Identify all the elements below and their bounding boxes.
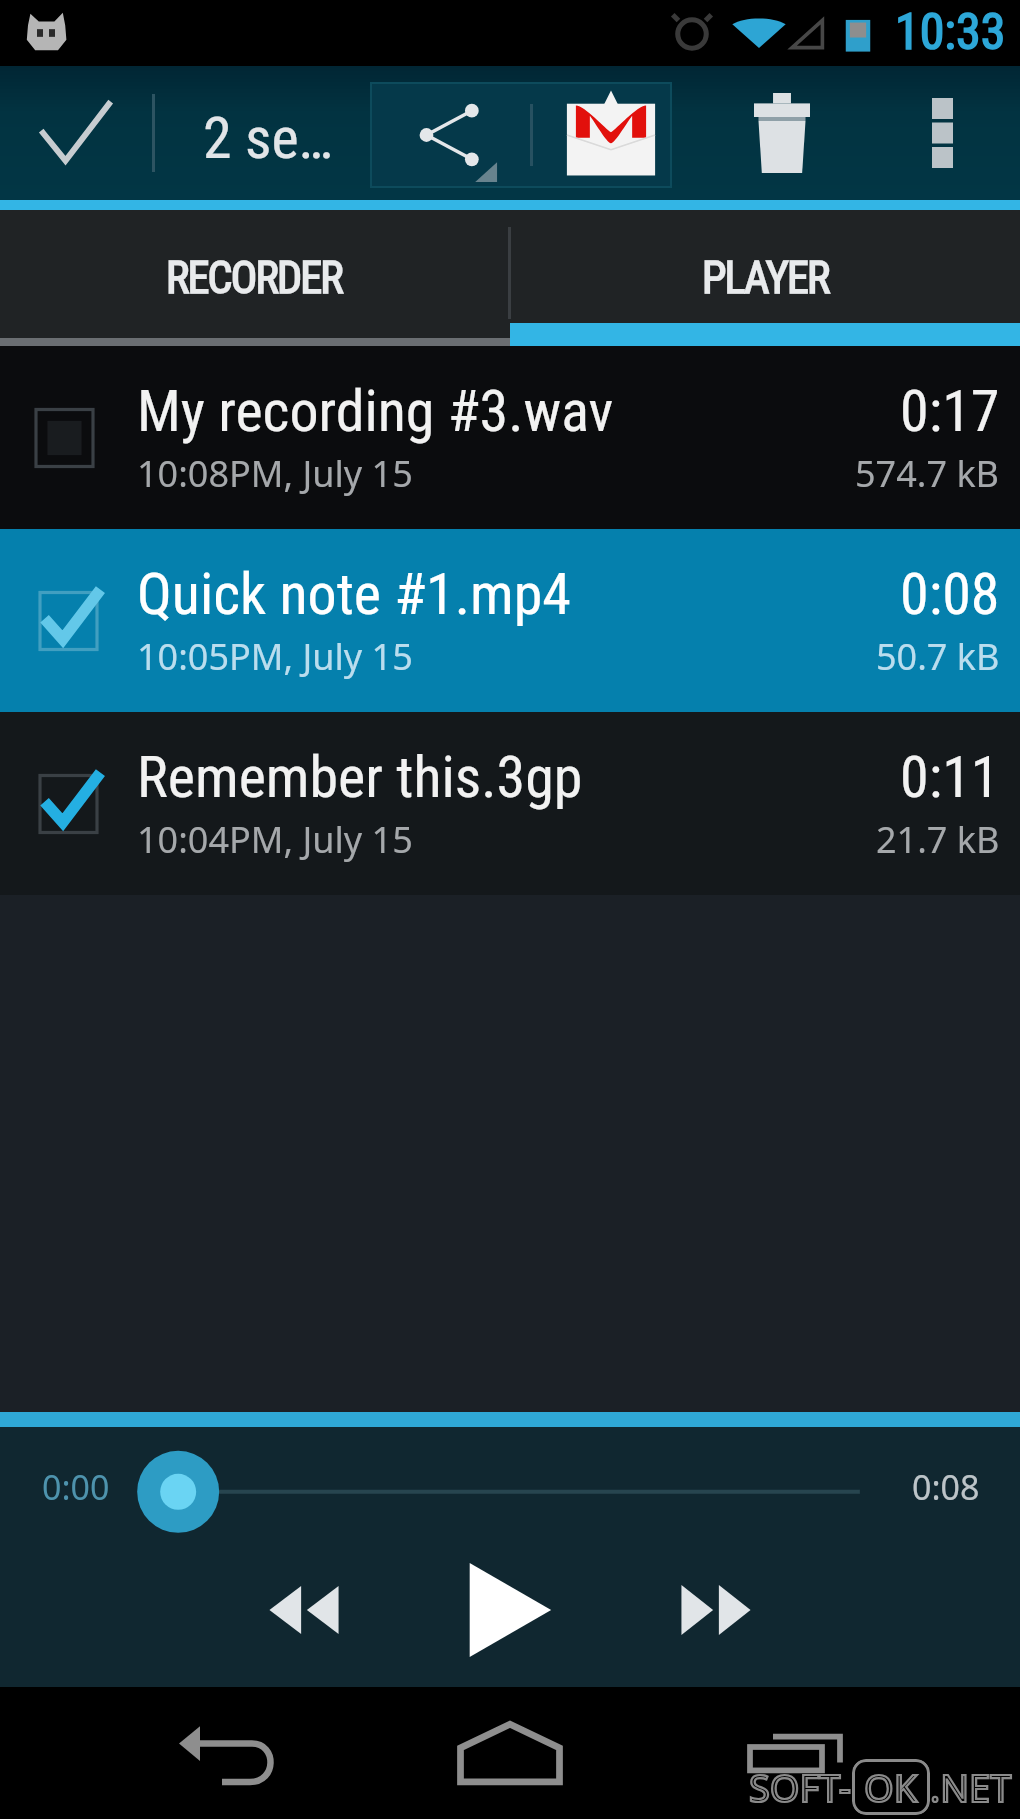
button[interactable]: Quick note #1.mp4: [0, 529, 1020, 712]
staticText: Remember this.3gp: [137, 743, 583, 811]
staticText: 50.7 kB: [876, 632, 1000, 681]
button[interactable]: Home: [340, 1687, 680, 1819]
button[interactable]: Gmail: [533, 82, 672, 188]
staticText: .NET: [930, 1761, 1012, 1813]
staticText: PLAYER: [702, 252, 829, 304]
button[interactable]: Delete: [700, 66, 864, 200]
staticText: 21.7 kB: [876, 815, 1000, 864]
button[interactable]: Done: [0, 66, 152, 200]
staticText: 574.7 kB: [855, 449, 1000, 498]
staticText: 10:08PM, July 15: [137, 449, 413, 498]
button[interactable]: Remember this.3gp: [0, 712, 1020, 895]
button[interactable]: Back: [0, 1687, 340, 1819]
staticText: 10:33: [895, 3, 1006, 62]
button[interactable]: Play: [440, 1542, 580, 1677]
button[interactable]: Recent apps: [680, 1687, 1020, 1819]
staticText: 2 se…: [203, 104, 333, 172]
button[interactable]: RECORDER: [0, 210, 508, 323]
button[interactable]: PLAYER: [511, 210, 1020, 323]
button[interactable]: My recording #3.wav: [0, 346, 1020, 529]
staticText: Quick note #1.mp4: [137, 560, 571, 628]
button[interactable]: Fast forward: [646, 1542, 786, 1677]
staticText: 0:11: [900, 743, 1000, 811]
staticText: 0:08: [912, 1464, 980, 1510]
staticText: 0:08: [900, 560, 1000, 628]
button[interactable]: 2 se…: [155, 66, 371, 200]
staticText: SOFT-: [749, 1761, 852, 1813]
staticText: 10:04PM, July 15: [137, 815, 413, 864]
staticText: RECORDER: [166, 252, 342, 304]
button[interactable]: Rewind: [234, 1542, 374, 1677]
staticText: 10:05PM, July 15: [137, 632, 413, 681]
staticText: 0:00: [42, 1464, 110, 1510]
staticText: 0:17: [900, 377, 1000, 445]
button[interactable]: Share: [370, 82, 530, 188]
button[interactable]: More options: [864, 66, 1020, 200]
staticText: My recording #3.wav: [137, 377, 614, 445]
staticText: OK: [864, 1761, 918, 1813]
